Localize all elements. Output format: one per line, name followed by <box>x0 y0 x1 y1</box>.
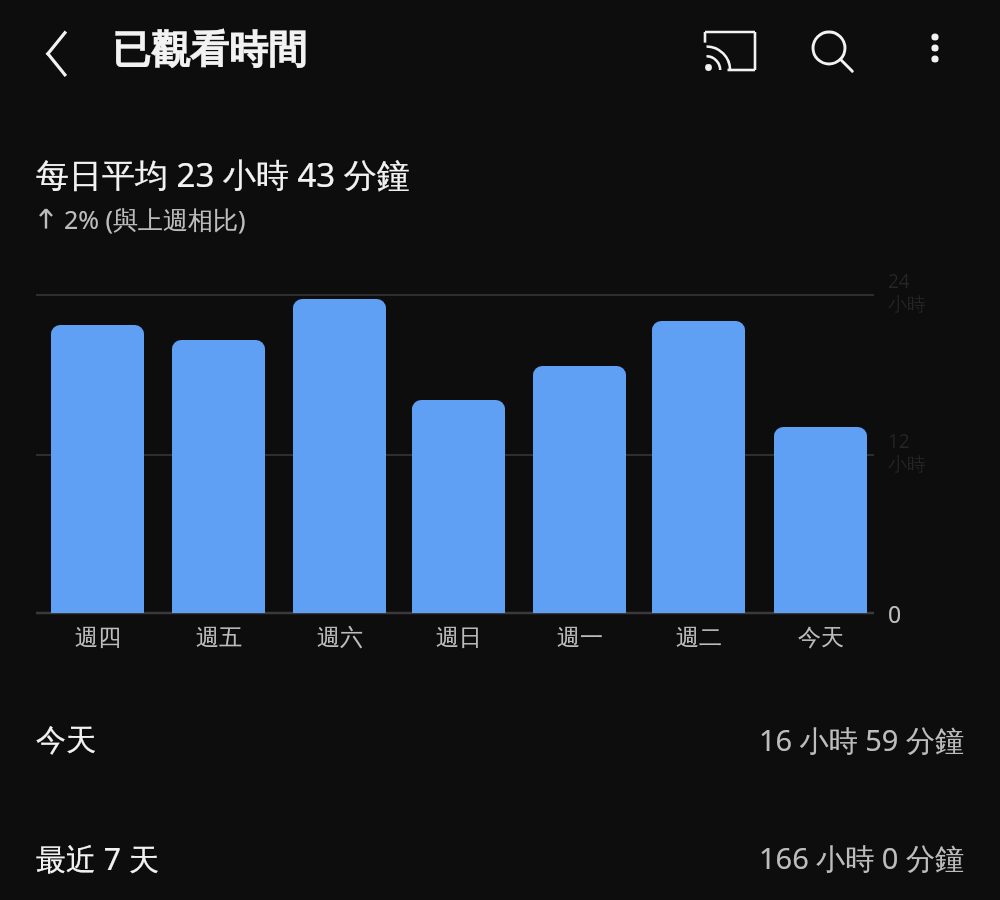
staticText: 2% (與上週相比) <box>64 202 246 236</box>
staticText: 12 小時 <box>888 428 926 477</box>
button[interactable]: Cast <box>694 22 766 82</box>
button[interactable]: Search <box>798 22 868 82</box>
button[interactable]: 今天 <box>0 700 1000 780</box>
staticText: 週六 <box>317 623 363 652</box>
staticText: 週二 <box>676 623 722 652</box>
staticText: 今天 <box>36 721 96 759</box>
staticText: 24 小時 <box>888 268 926 317</box>
staticText: 週四 <box>75 623 121 652</box>
staticText: 今天 <box>798 623 844 652</box>
button[interactable]: 最近 7 天 <box>0 818 1000 898</box>
staticText: 0 <box>888 598 902 629</box>
staticText: 最近 7 天 <box>36 838 159 879</box>
staticText: 週日 <box>436 623 482 652</box>
staticText: 已觀看時間 <box>112 25 307 74</box>
staticText: 每日平均 23 小時 43 分鐘 <box>36 152 410 197</box>
staticText: 週一 <box>557 623 603 652</box>
button[interactable]: Back <box>20 25 90 85</box>
button[interactable]: More options <box>902 22 968 82</box>
staticText: 16 小時 59 分鐘 <box>759 720 964 760</box>
staticText: 166 小時 0 分鐘 <box>759 838 964 878</box>
staticText: 週五 <box>196 623 242 652</box>
